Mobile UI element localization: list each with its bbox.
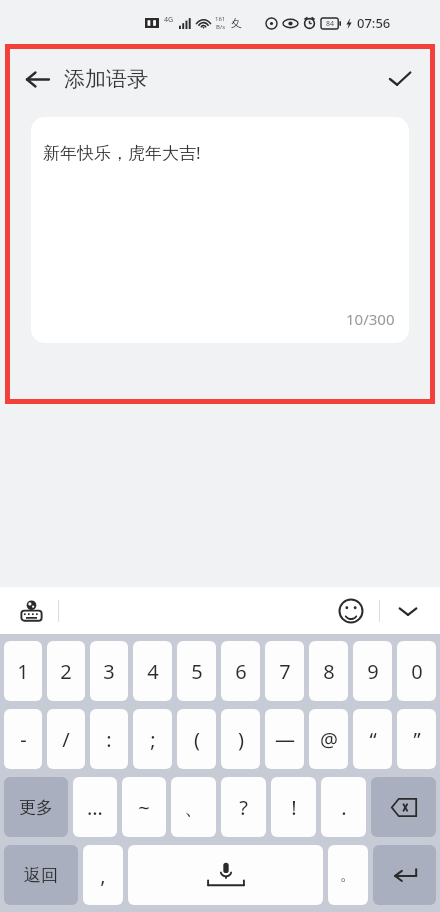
button[interactable]: 新年快乐，虎年大吉! [31,117,409,343]
button[interactable]: ! [271,777,316,837]
staticText: B/s [216,23,226,31]
staticText: … [87,794,103,821]
button[interactable]: Back [10,52,64,106]
staticText: 4G [164,15,174,25]
button[interactable]: 。 [328,845,368,905]
staticText: ; [150,726,156,753]
staticText: 新年快乐，虎年大吉! [43,141,201,164]
staticText: ! [291,794,297,821]
staticText: 2 [60,658,72,685]
staticText: 4 [147,658,159,685]
staticText: 5 [191,658,203,685]
staticText: 返回 [24,865,58,886]
button[interactable]: 8 [309,641,348,701]
button[interactable]: ) [221,709,260,769]
button[interactable]: @ [309,709,348,769]
button[interactable]: … [73,777,117,837]
staticText: ” [413,726,421,753]
button[interactable]: ( [177,709,216,769]
staticText: — [275,726,295,753]
staticText: “ [369,726,377,753]
staticText: 0 [411,658,423,685]
button[interactable]: . [321,777,366,837]
staticText: @ [320,726,338,753]
button[interactable]: ? [221,777,266,837]
staticText: 更多 [19,797,53,818]
staticText: 添加语录 [64,66,148,92]
button[interactable]: — [265,709,304,769]
staticText: 6 [235,658,247,685]
staticText: ~ [138,794,150,821]
staticText: , [100,862,106,889]
button[interactable]: Confirm [372,51,428,107]
staticText: / [62,726,70,753]
staticText: ( [194,726,200,753]
staticText: 夊 [231,16,242,30]
button[interactable]: / [47,709,85,769]
button[interactable]: 1 [4,641,42,701]
staticText: ? [239,794,248,821]
button[interactable]: 7 [265,641,304,701]
staticText: 10/300 [346,309,395,329]
staticText: : [106,726,112,753]
button[interactable]: ; [133,709,172,769]
button[interactable]: : [90,709,128,769]
staticText: 3 [103,658,115,685]
button[interactable]: 9 [353,641,392,701]
button[interactable]: ~ [122,777,166,837]
staticText: . [341,794,347,821]
staticText: 07:56 [357,14,391,32]
button[interactable]: ” [397,709,436,769]
button[interactable]: 6 [221,641,260,701]
staticText: 。 [340,865,356,885]
button[interactable]: 2 [47,641,85,701]
button[interactable]: Enter [373,845,436,905]
button[interactable]: 返回 [4,845,78,905]
staticText: 84 [326,19,335,29]
button[interactable]: - [4,709,42,769]
staticText: ) [238,726,244,753]
button[interactable]: “ [353,709,392,769]
button[interactable]: 5 [177,641,216,701]
button[interactable]: , [83,845,123,905]
staticText: 8 [323,658,335,685]
button[interactable]: Delete [371,777,436,837]
button[interactable]: 0 [397,641,436,701]
button[interactable]: Space [128,845,323,905]
staticText: 7 [279,658,291,685]
button[interactable]: 更多 [4,777,68,837]
staticText: 161 [215,15,226,23]
staticText: 9 [367,658,379,685]
staticText: 、 [184,795,204,820]
button[interactable]: Hide keyboard [390,593,426,629]
staticText: - [20,726,27,753]
button[interactable]: 4 [133,641,172,701]
button[interactable]: Switch input language [14,594,48,628]
button[interactable]: Emoji [333,593,369,629]
staticText: 1 [17,658,29,685]
button[interactable]: 、 [171,777,216,837]
button[interactable]: 3 [90,641,128,701]
